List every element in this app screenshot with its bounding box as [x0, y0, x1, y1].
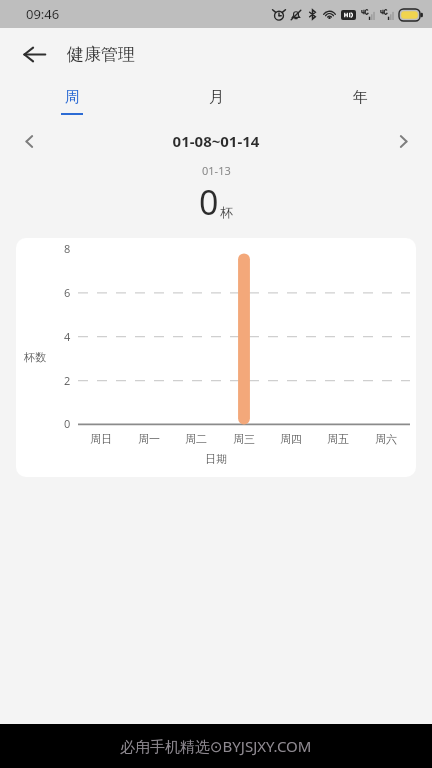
staticText: 月 — [209, 88, 224, 107]
button[interactable]: 上一周 — [12, 124, 46, 158]
staticText: 4 — [64, 329, 71, 344]
button[interactable]: 周 — [0, 80, 144, 122]
staticText: 周四 — [280, 432, 302, 446]
staticText: 01-08~01-14 — [46, 131, 386, 151]
staticText: 2 — [64, 373, 71, 388]
button[interactable]: 年 — [288, 80, 432, 122]
staticText: 周一 — [138, 432, 160, 446]
button[interactable]: 返回 — [13, 33, 55, 75]
staticText: 周日 — [90, 432, 112, 446]
button[interactable]: 月 — [144, 80, 288, 122]
staticText: 周三 — [233, 432, 255, 446]
staticText: 0 — [64, 416, 71, 431]
staticText: 6 — [64, 285, 71, 300]
staticText: 健康管理 — [67, 44, 135, 65]
staticText: 8 — [64, 241, 71, 256]
staticText: 年 — [353, 88, 368, 107]
staticText: 0 — [199, 179, 219, 225]
staticText: 周六 — [375, 432, 397, 446]
staticText: 日期 — [205, 452, 227, 466]
staticText: 09:46 — [26, 5, 60, 23]
staticText: 周五 — [327, 432, 349, 446]
staticText: 01-13 — [202, 163, 231, 178]
staticText: 必甪手机精选⊙BYJSJXY.COM — [120, 736, 312, 756]
staticText: 杯 — [220, 204, 233, 220]
button[interactable]: 下一周 — [386, 124, 420, 158]
staticText: 周 — [65, 88, 80, 107]
staticText: 杯数 — [24, 350, 46, 364]
staticText: 周二 — [185, 432, 207, 446]
